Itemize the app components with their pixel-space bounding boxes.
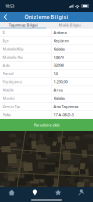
staticText: İlçe: [2, 38, 8, 43]
button[interactable]: Malik Bilgisi: [46, 22, 93, 28]
staticText: Keçiören: [53, 38, 68, 43]
button[interactable]: Favorites: [46, 187, 70, 198]
staticText: Kalaba: [53, 96, 64, 101]
staticText: 32098: [53, 63, 63, 68]
button[interactable]: Parselime ekle: [0, 119, 93, 131]
staticText: İl: [2, 30, 4, 35]
staticText: Önizleme Bilgisi: [24, 13, 68, 21]
staticText: Ankara: [53, 30, 66, 35]
staticText: 17 A-08-D-3: [53, 112, 73, 117]
button[interactable]: Map: [23, 187, 46, 198]
staticText: Parsel: [2, 71, 13, 76]
button[interactable]: Taşınmaz Bilgisi: [0, 22, 46, 28]
staticText: 14879: [53, 54, 63, 60]
staticText: Ada: [2, 63, 9, 68]
staticText: Nitelik: [2, 87, 13, 93]
staticText: 14: [53, 71, 57, 76]
staticText: Pafta: [2, 112, 10, 117]
staticText: Zemin Tip: [2, 104, 19, 109]
staticText: Parselime ekle: [33, 122, 59, 128]
button[interactable]: Home: [0, 187, 23, 198]
button[interactable]: Back: [0, 12, 13, 22]
staticText: Mahalle/Köy: [2, 46, 23, 51]
staticText: Kalaba: [53, 46, 64, 51]
staticText: Yüzölçümü: [2, 79, 21, 84]
staticText: Taşınmaz Bilgisi: [9, 22, 38, 27]
staticText: Mevkii: [2, 96, 14, 101]
staticText: Mahalle No: [2, 54, 22, 60]
staticText: Ana Taşınmaz: [53, 104, 78, 109]
staticText: 1.230,00: [53, 79, 67, 84]
staticText: Malik Bilgisi: [59, 22, 81, 27]
staticText: Arsa: [53, 87, 62, 93]
button[interactable]: Profile: [70, 187, 93, 198]
staticText: 18:53: [5, 3, 14, 9]
